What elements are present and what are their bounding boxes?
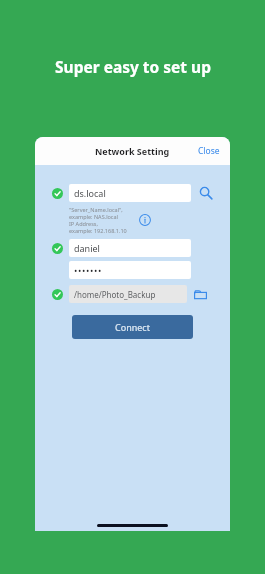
button[interactable]: Search (197, 184, 215, 202)
staticText: "Server_Name.local", (69, 206, 123, 213)
button[interactable]: ••••••• (69, 261, 191, 279)
button[interactable]: Connect (72, 315, 193, 339)
staticText: ds.local (74, 187, 106, 199)
staticText: Network Setting (95, 145, 170, 157)
staticText: IP Address, (69, 220, 98, 227)
button[interactable]: /home/Photo_Backup (69, 285, 187, 303)
button[interactable]: Browse folder (191, 285, 209, 303)
button[interactable]: Information (137, 212, 153, 228)
staticText: Connect (115, 321, 150, 333)
button[interactable]: daniel (69, 239, 191, 257)
button[interactable]: Close (188, 139, 230, 163)
staticText: Close (198, 145, 220, 157)
staticText: daniel (74, 242, 100, 254)
staticText: Super easy to set up (55, 56, 211, 77)
staticText: /home/Photo_Backup (74, 289, 156, 300)
staticText: example: 192.168.1.10 (69, 227, 127, 234)
staticText: example: NAS.local (69, 213, 119, 220)
button[interactable]: ds.local (69, 184, 191, 202)
staticText: ••••••• (74, 264, 102, 276)
